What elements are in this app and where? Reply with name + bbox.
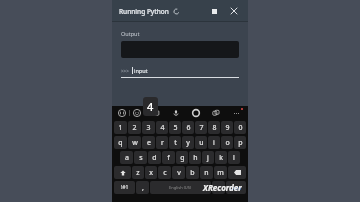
button[interactable]: m [214, 166, 227, 179]
button[interactable]: i [208, 136, 220, 149]
button[interactable]: g [176, 151, 188, 164]
button[interactable]: k [215, 151, 227, 164]
staticText: XRecorder [203, 182, 242, 193]
staticText: 4 [147, 99, 154, 114]
staticText: s [139, 153, 143, 163]
staticText: h [193, 153, 198, 163]
button[interactable]: 4 [156, 121, 168, 134]
staticText: f [167, 153, 170, 163]
button[interactable]: 6 [182, 121, 194, 134]
staticText: k [219, 153, 223, 163]
staticText: input [134, 67, 148, 74]
button[interactable]: l [228, 151, 240, 164]
button[interactable]: Done [226, 181, 246, 194]
staticText: d [152, 153, 157, 163]
staticText: r [161, 138, 164, 148]
button[interactable]: f [162, 151, 175, 164]
button[interactable]: Close [227, 4, 241, 18]
button[interactable]: t [169, 136, 181, 149]
staticText: 4 [160, 123, 165, 133]
button[interactable]: Space [150, 181, 211, 194]
staticText: x [149, 168, 153, 178]
button[interactable]: Shift [114, 166, 131, 179]
staticText: e [147, 138, 151, 148]
staticText: English (US) [169, 185, 192, 190]
button[interactable]: a [120, 151, 133, 164]
button[interactable]: y [182, 136, 194, 149]
button[interactable]: o [221, 136, 233, 149]
staticText: 2 [132, 123, 137, 133]
button[interactable]: 0 [234, 121, 246, 134]
staticText: m [217, 168, 224, 178]
staticText: t [174, 138, 177, 148]
button[interactable]: 8 [208, 121, 220, 134]
staticText: b [190, 168, 195, 178]
button[interactable]: . [212, 181, 225, 194]
staticText: 1 [118, 123, 123, 133]
button[interactable]: h [189, 151, 201, 164]
button[interactable]: z [132, 166, 144, 179]
button[interactable]: 5 [169, 121, 181, 134]
button[interactable]: n [200, 166, 213, 179]
button[interactable]: r [156, 136, 168, 149]
staticText: v [177, 168, 181, 178]
button[interactable]: u [195, 136, 207, 149]
staticText: n [204, 168, 209, 178]
staticText: j [207, 153, 209, 163]
button[interactable]: Backspace [228, 166, 246, 179]
button[interactable]: , [136, 181, 149, 194]
button[interactable]: s [134, 151, 147, 164]
staticText: g [180, 153, 185, 163]
button[interactable]: b [186, 166, 199, 179]
staticText: y [186, 138, 190, 148]
button[interactable]: 7 [195, 121, 207, 134]
button[interactable]: 9 [221, 121, 233, 134]
staticText: q [118, 138, 123, 148]
staticText: !#1 [121, 184, 129, 191]
button[interactable]: p [234, 136, 246, 149]
staticText: , [142, 183, 144, 193]
button[interactable]: d [148, 151, 161, 164]
button[interactable]: Voice input [171, 108, 181, 118]
button[interactable]: c [158, 166, 171, 179]
button[interactable]: v [172, 166, 185, 179]
staticText: l [233, 153, 235, 163]
button[interactable]: Settings [191, 108, 201, 118]
staticText: . [218, 183, 220, 193]
staticText: Running Python [119, 7, 169, 16]
staticText: 3 [146, 123, 151, 133]
staticText: c [163, 168, 167, 178]
button[interactable]: 2 [128, 121, 141, 134]
staticText: 9 [225, 123, 230, 133]
button[interactable]: 1 [114, 121, 127, 134]
button[interactable]: q [114, 136, 127, 149]
button[interactable]: Clipboard [211, 108, 221, 118]
button[interactable]: e [142, 136, 155, 149]
staticText: p [238, 138, 243, 148]
button[interactable]: 3 [142, 121, 155, 134]
button[interactable]: Stickers [151, 108, 161, 118]
button[interactable]: x [145, 166, 157, 179]
button[interactable]: !#1 [114, 181, 135, 194]
staticText: 0 [238, 123, 243, 133]
staticText: o [225, 138, 230, 148]
staticText: >>> [121, 68, 129, 74]
button[interactable]: Emoji [132, 108, 142, 118]
staticText: u [199, 138, 204, 148]
staticText: 8 [212, 123, 217, 133]
button[interactable]: j [202, 151, 214, 164]
staticText: Done [230, 185, 242, 191]
button[interactable]: Stop [207, 4, 221, 18]
staticText: i [213, 138, 215, 148]
button[interactable]: Voice typing settings [117, 108, 127, 118]
staticText: w [132, 138, 138, 148]
button[interactable]: More options [231, 108, 241, 118]
staticText: Output [121, 30, 140, 37]
staticText: 7 [199, 123, 204, 133]
button[interactable]: w [128, 136, 141, 149]
staticText: a [125, 153, 129, 163]
staticText: 6 [186, 123, 191, 133]
staticText: z [136, 168, 140, 178]
staticText: 5 [173, 123, 178, 133]
